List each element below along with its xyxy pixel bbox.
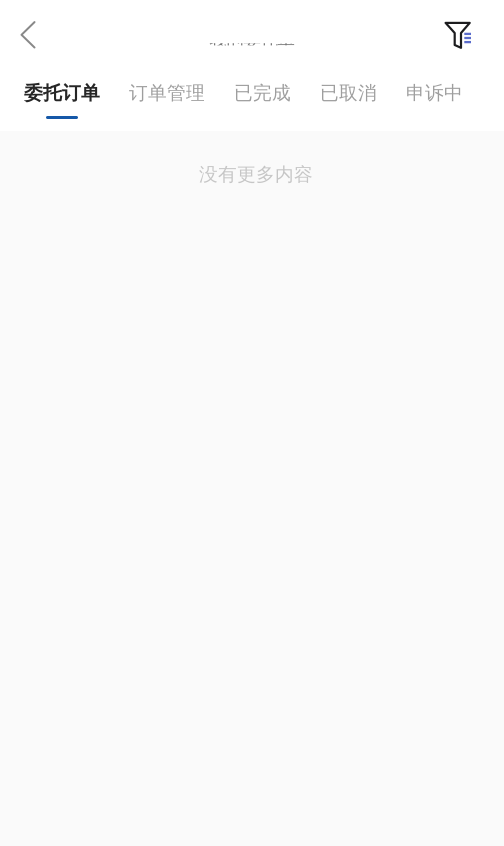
button[interactable]: 订单管理 bbox=[129, 70, 205, 131]
staticText: 委托订单 bbox=[24, 81, 100, 104]
button[interactable]: 委托订单 bbox=[24, 70, 100, 131]
staticText: 已完成 bbox=[234, 81, 291, 104]
button[interactable]: 返回 bbox=[6, 0, 50, 70]
button[interactable]: 申诉中 bbox=[406, 70, 463, 131]
staticText: 申诉中 bbox=[406, 81, 463, 104]
button[interactable]: 已取消 bbox=[320, 70, 377, 131]
staticText: 没有更多内容 bbox=[199, 163, 313, 186]
staticText: 订单管理 bbox=[129, 81, 205, 104]
button[interactable]: 已完成 bbox=[234, 70, 291, 131]
button[interactable]: 筛选 bbox=[436, 0, 480, 70]
staticText: 已取消 bbox=[320, 81, 377, 104]
staticText: 我的委托单 bbox=[209, 30, 294, 52]
